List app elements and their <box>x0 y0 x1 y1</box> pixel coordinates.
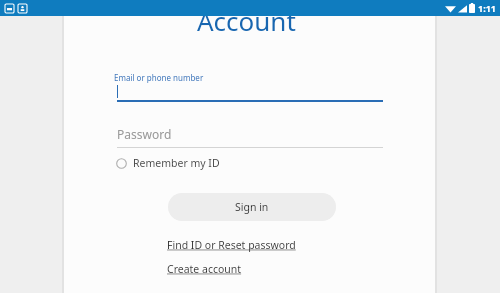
staticText: Email or phone number <box>114 72 204 83</box>
staticText: 1:11 <box>478 2 496 14</box>
staticText: Create account <box>167 262 242 276</box>
button[interactable]: Password <box>117 126 383 148</box>
button[interactable]: Find ID or Reset password <box>167 237 296 253</box>
staticText: Find ID or Reset password <box>167 238 296 252</box>
other: Notification <box>18 4 27 13</box>
button[interactable]: Create account <box>167 261 242 277</box>
staticText: Account <box>197 3 296 38</box>
button[interactable]: Sign in <box>168 193 336 221</box>
button[interactable]: Remember my ID <box>116 153 220 173</box>
staticText: Remember my ID <box>133 156 220 170</box>
staticText: Password <box>117 126 172 142</box>
staticText: Sign in <box>235 200 269 214</box>
button[interactable] <box>117 84 383 102</box>
other: Notification <box>5 4 14 13</box>
